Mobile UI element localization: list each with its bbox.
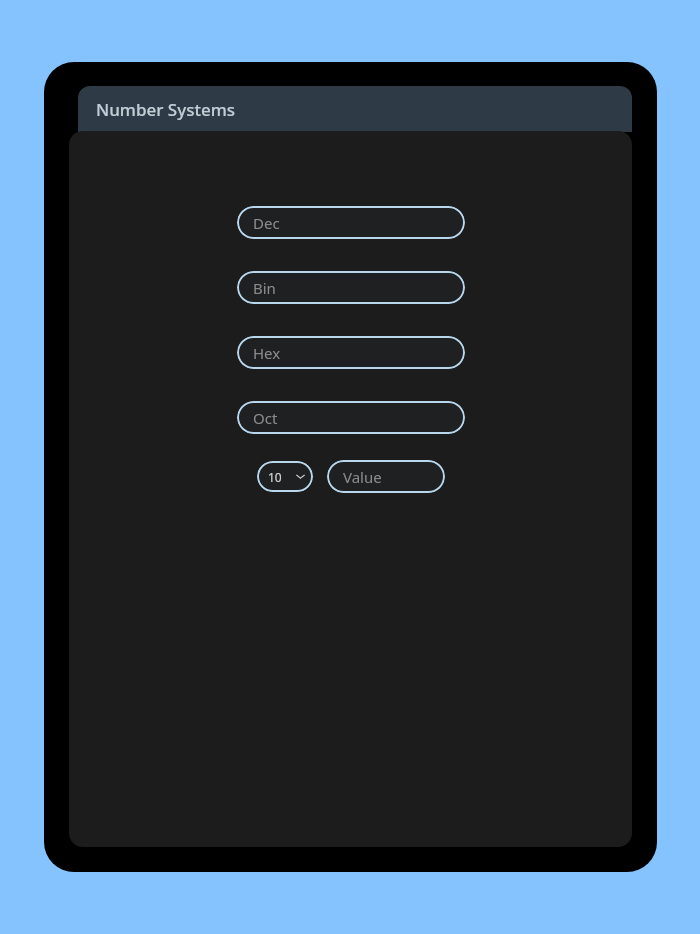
button[interactable]: Hex — [237, 336, 465, 369]
button[interactable]: Bin — [237, 271, 465, 304]
button[interactable]: Dec — [237, 206, 465, 239]
staticText: Value — [343, 467, 382, 487]
button[interactable]: Select number base — [257, 461, 313, 492]
button[interactable]: Oct — [237, 401, 465, 434]
staticText: Oct — [253, 408, 278, 428]
staticText: Hex — [253, 343, 281, 363]
button[interactable]: Value — [327, 460, 445, 493]
staticText: Bin — [253, 278, 276, 298]
staticText: Dec — [253, 213, 280, 233]
staticText: 10 — [268, 469, 282, 485]
staticText: Number Systems — [96, 98, 236, 121]
